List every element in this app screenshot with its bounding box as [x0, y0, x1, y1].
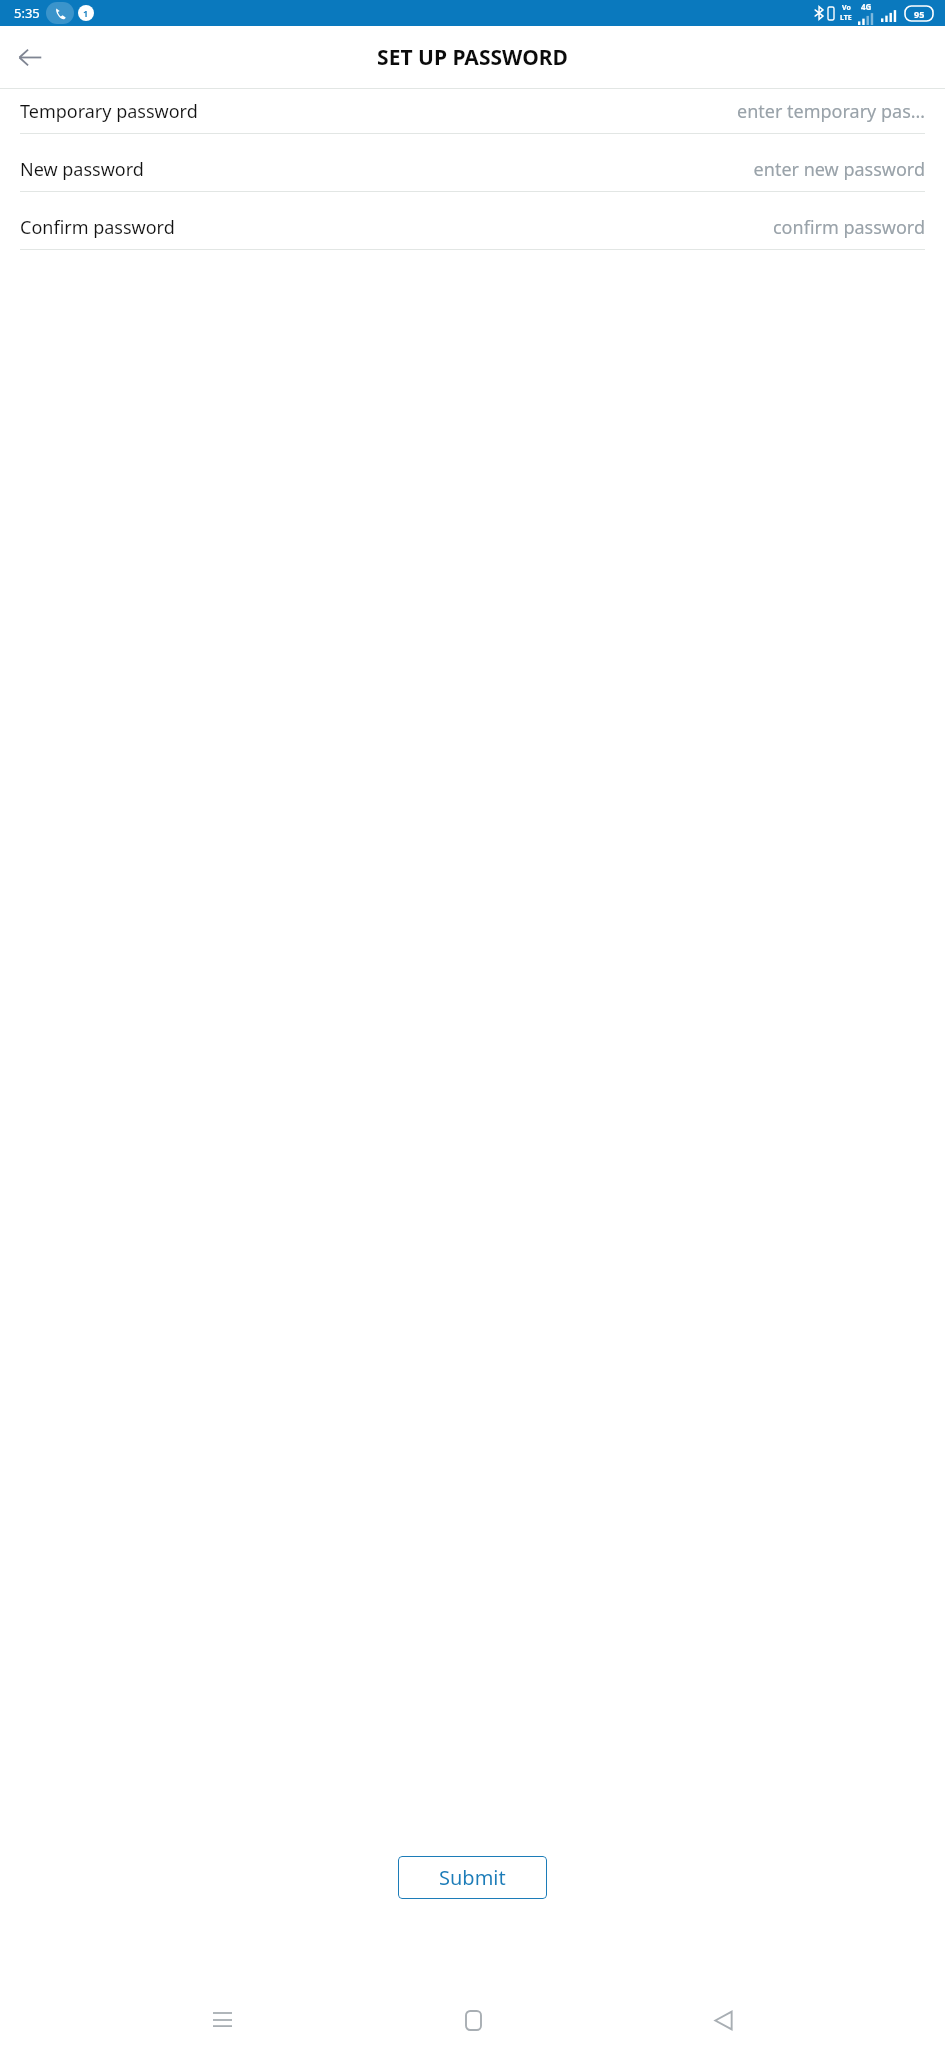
staticText: enter temporary pas… — [737, 99, 925, 124]
staticText: Vo — [842, 3, 851, 13]
button[interactable]: Recent apps — [194, 1992, 250, 2048]
staticText: 5:35 — [14, 4, 40, 22]
staticText: SET UP PASSWORD — [377, 43, 568, 72]
button[interactable]: Temporary password — [0, 89, 945, 147]
button[interactable]: Submit — [398, 1856, 547, 1899]
staticText: 4G — [861, 1, 872, 12]
button[interactable]: Home — [445, 1992, 501, 2048]
staticText: Temporary password — [20, 99, 198, 124]
button[interactable]: Back — [695, 1992, 751, 2048]
staticText: New password — [20, 157, 144, 182]
staticText: LTE — [840, 13, 852, 23]
staticText: 95 — [914, 8, 925, 20]
staticText: confirm password — [772, 215, 925, 240]
button[interactable]: Back — [6, 33, 54, 81]
staticText: Confirm password — [20, 215, 175, 240]
button[interactable]: Confirm password — [0, 205, 945, 263]
staticText: 1 — [83, 7, 89, 19]
button[interactable]: New password — [0, 147, 945, 205]
staticText: Submit — [439, 1864, 506, 1891]
staticText: enter new password — [753, 157, 925, 182]
